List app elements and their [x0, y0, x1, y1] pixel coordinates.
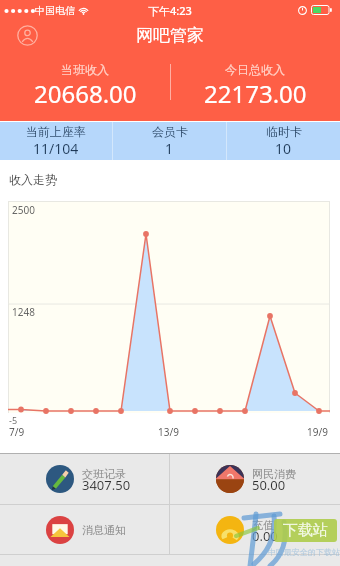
staticText: 13/9 [158, 425, 179, 439]
staticText: 3407.50 [82, 476, 131, 494]
staticText: 交班记录 [82, 467, 126, 481]
button[interactable]: 交班记录 [0, 454, 169, 504]
staticText: 下午4:23 [148, 3, 192, 18]
staticText: 22173.00 [204, 77, 307, 110]
staticText: 收入走势 [9, 172, 57, 187]
button[interactable]: Account [17, 25, 38, 46]
staticText: 2500 [12, 203, 35, 217]
button[interactable]: 临时卡 [227, 122, 340, 160]
staticText: 当前上座率 [26, 124, 86, 139]
button[interactable]: 网民消费 [170, 454, 340, 504]
staticText: 19/9 [307, 425, 328, 439]
staticText: 充值 [252, 518, 274, 532]
staticText: 临时卡 [266, 124, 302, 139]
staticText: 1248 [12, 305, 35, 319]
staticText: 网吧管家 [136, 25, 204, 46]
staticText: 50.00 [252, 476, 286, 494]
staticText: 中国电信 [35, 4, 75, 17]
button[interactable]: 消息通知 [0, 505, 169, 554]
button[interactable]: 充值 [170, 505, 340, 554]
staticText: 中国最安全的下载站 [268, 547, 340, 557]
staticText: 10 [275, 139, 292, 158]
staticText: 今日总收入 [225, 62, 285, 77]
button[interactable]: 当前上座率 [0, 122, 112, 160]
staticText: 会员卡 [152, 124, 188, 139]
staticText: 1 [165, 139, 174, 158]
staticText: 0.00 [252, 527, 278, 545]
staticText: 20668.00 [34, 77, 137, 110]
button[interactable]: 会员卡 [113, 122, 226, 160]
staticText: 下载站 [283, 521, 328, 540]
staticText: 11/104 [33, 139, 79, 158]
staticText: 消息通知 [82, 523, 126, 537]
staticText: -5 [9, 414, 18, 426]
staticText: 7/9 [9, 425, 25, 439]
staticText: 当班收入 [61, 62, 109, 77]
staticText: 网民消费 [252, 467, 296, 481]
